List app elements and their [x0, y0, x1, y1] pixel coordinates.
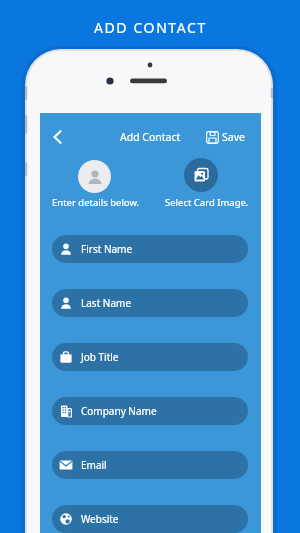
- staticText: Job Title: [81, 350, 119, 364]
- staticText: Email: [81, 458, 107, 472]
- button[interactable]: [184, 158, 218, 192]
- button[interactable]: First Name: [52, 235, 248, 263]
- button[interactable]: [48, 128, 66, 146]
- button[interactable]: Last Name: [52, 289, 248, 317]
- button[interactable]: Website: [52, 505, 248, 533]
- staticText: Select Card Image.: [165, 196, 249, 209]
- staticText: First Name: [81, 242, 133, 256]
- button[interactable]: Job Title: [52, 343, 248, 371]
- button[interactable]: [78, 160, 111, 193]
- button[interactable]: Company Name: [52, 397, 248, 425]
- button[interactable]: Save: [206, 128, 245, 146]
- staticText: Website: [81, 512, 119, 526]
- staticText: Company Name: [81, 404, 157, 418]
- staticText: Enter details below.: [52, 196, 140, 209]
- staticText: Add Contact: [120, 130, 181, 144]
- staticText: Save: [222, 130, 245, 144]
- button[interactable]: Email: [52, 451, 248, 479]
- staticText: Last Name: [81, 296, 132, 310]
- staticText: ADD CONTACT: [94, 18, 207, 37]
